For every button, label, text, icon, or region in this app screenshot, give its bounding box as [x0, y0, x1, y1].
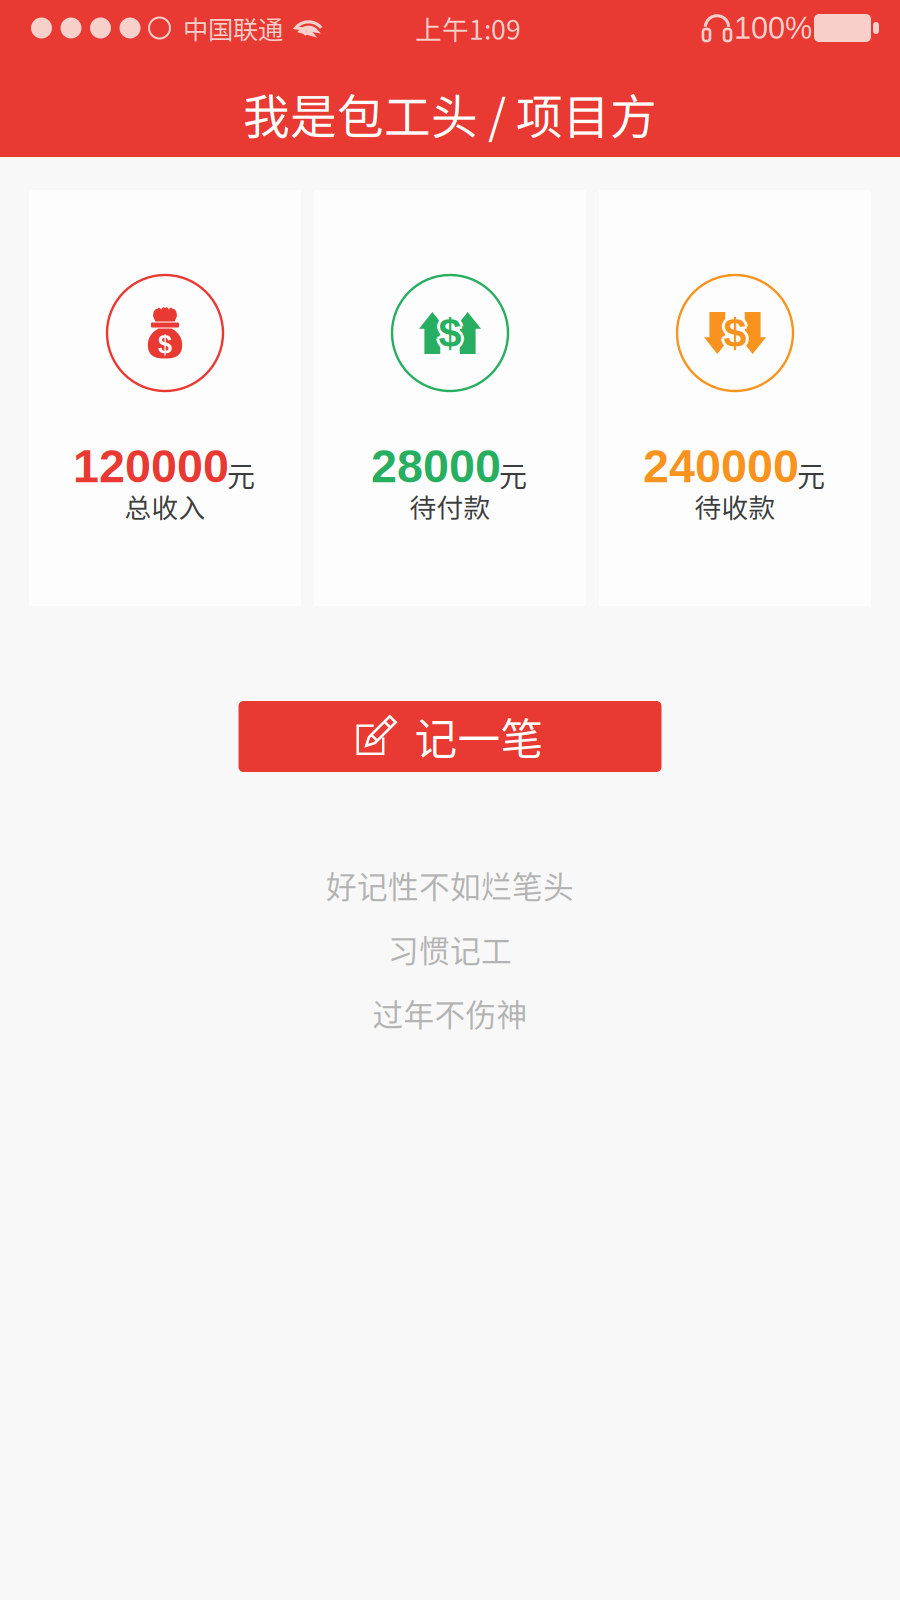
- staticText: $: [441, 310, 464, 356]
- staticText: 待付款: [409, 487, 490, 525]
- staticText: 好记性不如烂笔头: [326, 863, 574, 907]
- staticText: $: [436, 308, 459, 354]
- staticText: 过年不伤神: [372, 991, 527, 1035]
- staticText: 习惯记工: [388, 927, 512, 971]
- staticText: $: [441, 308, 464, 354]
- staticText: $: [726, 310, 749, 356]
- staticText: 240000: [643, 440, 799, 492]
- staticText: $: [158, 330, 172, 359]
- staticText: 总收入: [124, 487, 205, 525]
- staticText: 上午1:09: [415, 9, 521, 47]
- staticText: 28000: [371, 440, 501, 492]
- staticText: $: [438, 307, 461, 353]
- staticText: $: [726, 312, 749, 358]
- staticText: 元: [797, 454, 825, 495]
- staticText: $: [438, 310, 461, 356]
- staticText: 我是包工头 / 项目方: [243, 80, 657, 147]
- staticText: $: [723, 313, 746, 359]
- staticText: 100%: [734, 11, 812, 45]
- staticText: $: [441, 312, 464, 358]
- staticText: $: [726, 308, 749, 354]
- staticText: 120000: [73, 440, 229, 492]
- staticText: $: [438, 313, 461, 359]
- staticText: $: [436, 312, 459, 358]
- staticText: 记一笔: [414, 706, 543, 767]
- staticText: $: [435, 310, 458, 356]
- staticText: $: [721, 312, 744, 358]
- staticText: 元: [499, 454, 527, 495]
- staticText: 待收款: [694, 487, 775, 525]
- staticText: $: [723, 310, 746, 356]
- staticText: 元: [227, 454, 255, 495]
- staticText: $: [720, 310, 743, 356]
- staticText: $: [723, 307, 746, 353]
- button[interactable]: 记一笔: [238, 701, 661, 772]
- staticText: 中国联通: [183, 10, 283, 46]
- staticText: $: [721, 308, 744, 354]
